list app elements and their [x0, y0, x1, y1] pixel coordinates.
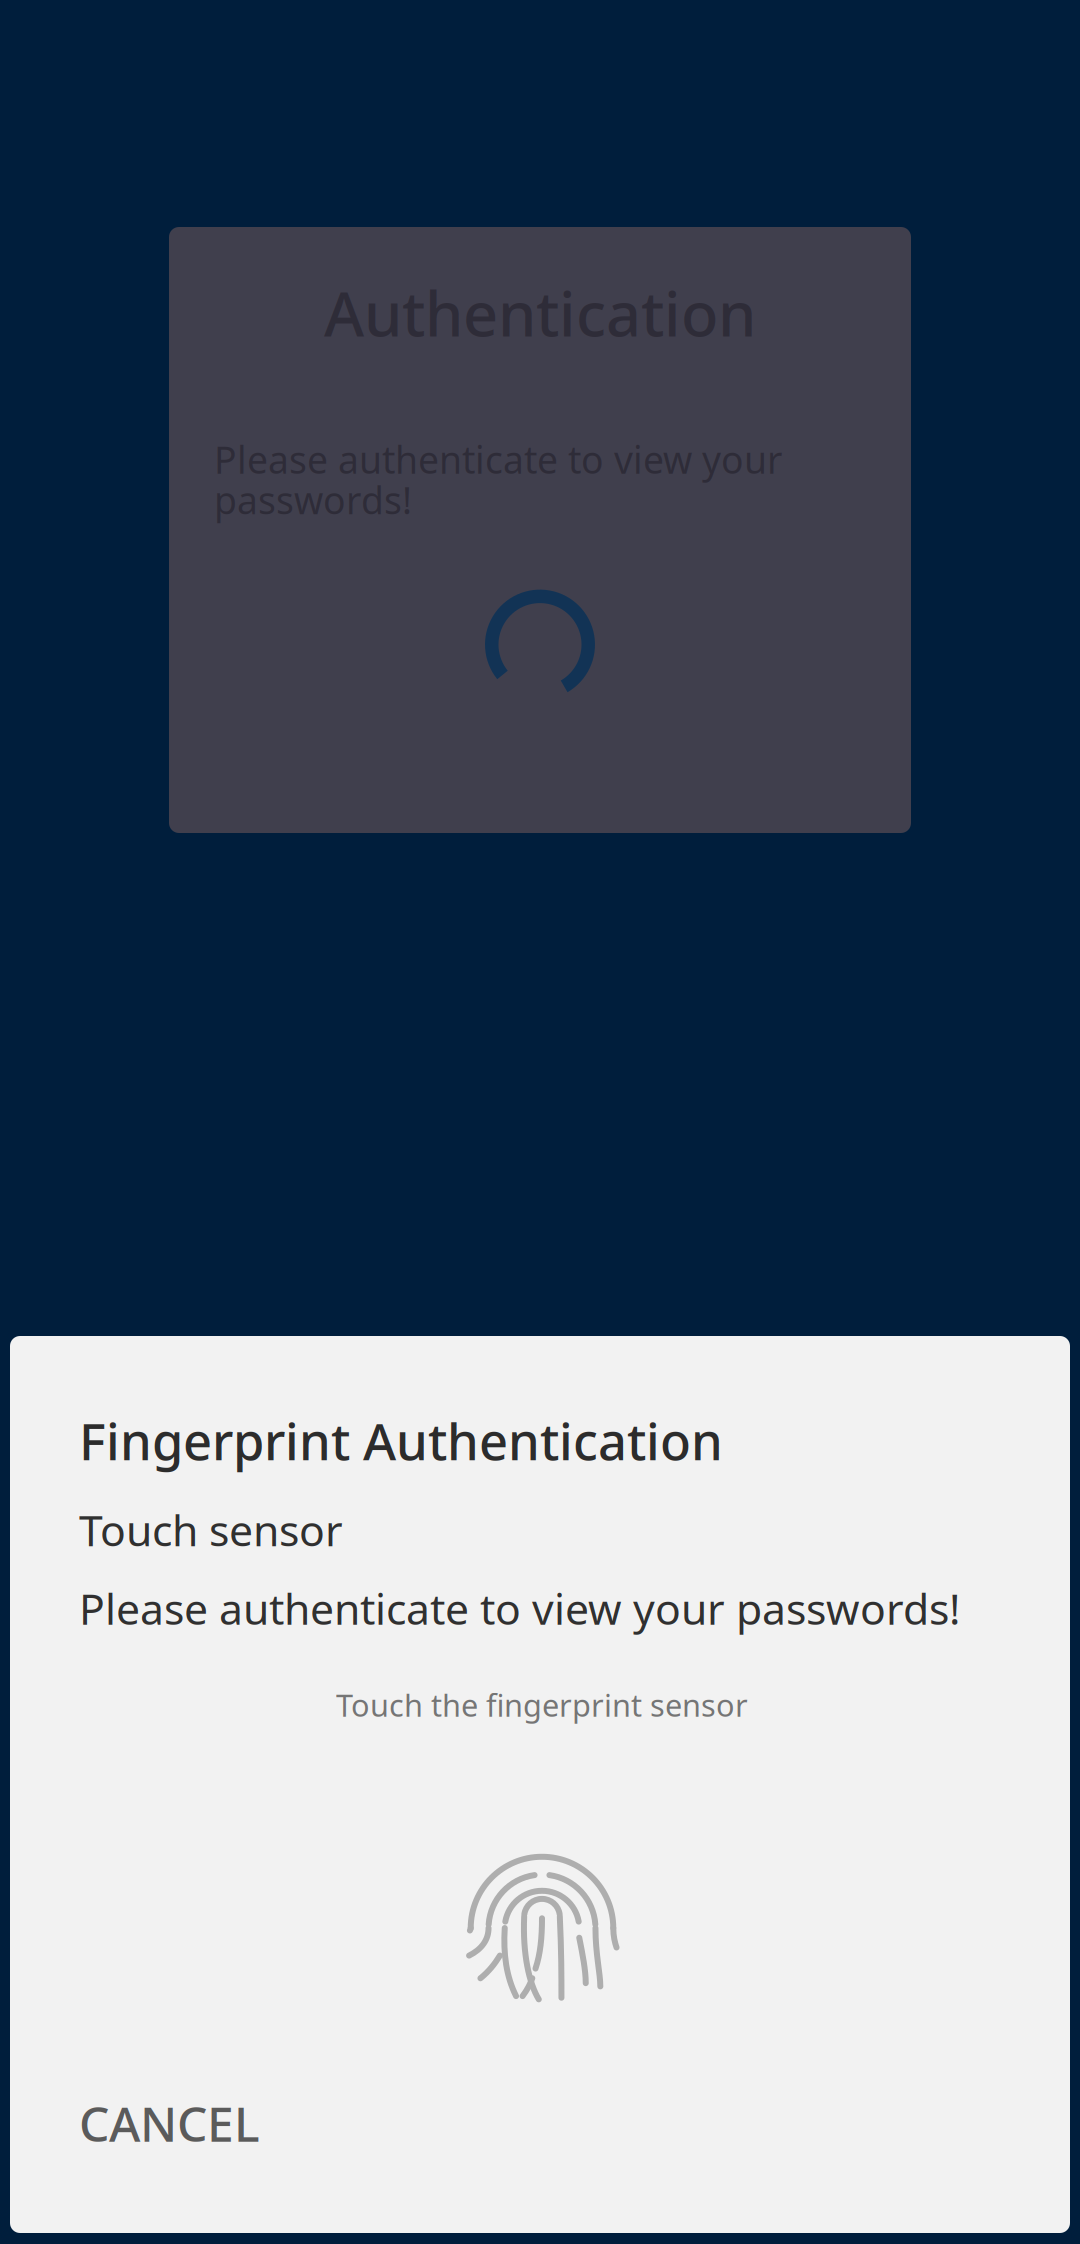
staticText: Please authenticate to view your passwor…: [79, 1580, 960, 1637]
staticText: Touch sensor: [79, 1501, 343, 1558]
staticText: Fingerprint Authentication: [79, 1407, 723, 1474]
button[interactable]: CANCEL: [79, 2067, 1005, 2179]
staticText: Authentication: [324, 272, 756, 353]
staticText: Touch the fingerprint sensor: [336, 1685, 748, 1725]
staticText: CANCEL: [79, 2091, 260, 2155]
staticText: Please authenticate to view your passwor…: [214, 434, 782, 525]
